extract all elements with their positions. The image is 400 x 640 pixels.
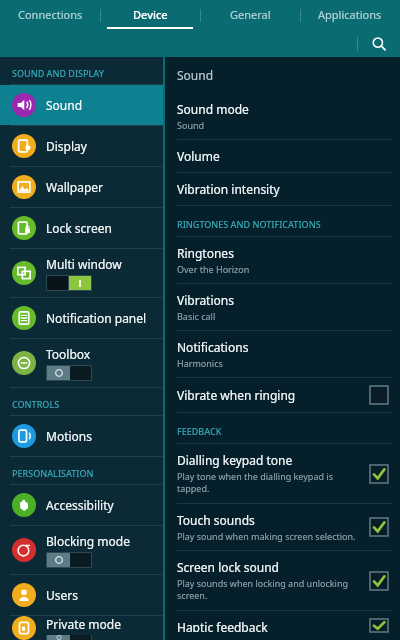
button[interactable]: Accessibility: [0, 485, 163, 525]
staticText: RINGTONES AND NOTIFICATIONS: [177, 218, 321, 230]
staticText: CONTROLS: [12, 398, 60, 410]
button[interactable]: Haptic feedback: [165, 611, 400, 640]
staticText: Blocking mode: [46, 533, 130, 549]
staticText: Dialling keypad tone: [177, 452, 293, 468]
staticText: Connections: [18, 7, 83, 22]
staticText: Display: [46, 138, 87, 154]
button[interactable]: [46, 635, 92, 640]
button[interactable]: [46, 365, 92, 381]
staticText: Harmonics: [177, 357, 223, 369]
button[interactable]: Blocking mode: [0, 526, 163, 574]
staticText: Play sound when making screen selection.: [177, 530, 356, 542]
button[interactable]: Toolbox: [0, 339, 163, 387]
button[interactable]: Search: [368, 33, 390, 55]
button[interactable]: Display: [0, 126, 163, 166]
staticText: Applications: [318, 7, 382, 22]
staticText: PERSONALISATION: [12, 467, 94, 479]
button[interactable]: Private mode: [0, 616, 163, 640]
staticText: Basic call: [177, 310, 216, 322]
button[interactable]: Wallpaper: [0, 167, 163, 207]
button[interactable]: Notifications: [165, 331, 400, 377]
button[interactable]: Toggle option: [370, 518, 388, 536]
button[interactable]: Lock screen: [0, 208, 163, 248]
staticText: Device: [133, 7, 168, 22]
button[interactable]: Dialling keypad tone: [165, 444, 400, 503]
button[interactable]: Volume: [165, 140, 400, 172]
button[interactable]: Users: [0, 575, 163, 615]
staticText: Play tone when the dialling keypad is ta…: [177, 470, 362, 495]
button[interactable]: Motions: [0, 416, 163, 456]
staticText: Play sounds when locking and unlocking s…: [177, 577, 362, 602]
staticText: Ringtones: [177, 245, 234, 261]
staticText: Notification panel: [46, 310, 147, 326]
button[interactable]: Vibration intensity: [165, 173, 400, 205]
button[interactable]: Toggle option: [370, 465, 388, 483]
staticText: SOUND AND DISPLAY: [12, 67, 104, 79]
staticText: Haptic feedback: [177, 619, 268, 632]
button[interactable]: Multi window: [0, 249, 163, 297]
button[interactable]: Toggle option: [370, 386, 388, 404]
staticText: Multi window: [46, 256, 122, 272]
staticText: Sound: [46, 97, 83, 113]
staticText: Vibrate when ringing: [177, 387, 296, 403]
staticText: Notifications: [177, 339, 249, 355]
button[interactable]: Notification panel: [0, 298, 163, 338]
button[interactable]: Toggle option: [370, 619, 388, 632]
button[interactable]: [46, 275, 92, 291]
staticText: Vibrations: [177, 292, 234, 308]
button[interactable]: General: [200, 0, 300, 31]
button[interactable]: Toggle option: [370, 572, 388, 590]
button[interactable]: Ringtones: [165, 237, 400, 283]
staticText: Touch sounds: [177, 512, 255, 528]
button[interactable]: Screen lock sound: [165, 551, 400, 610]
button[interactable]: Device: [100, 0, 200, 31]
staticText: Sound mode: [177, 101, 249, 117]
button[interactable]: Connections: [0, 0, 100, 31]
staticText: Lock screen: [46, 220, 113, 236]
button[interactable]: Touch sounds: [165, 504, 400, 550]
staticText: Private mode: [46, 616, 121, 632]
button[interactable]: Vibrations: [165, 284, 400, 330]
staticText: Motions: [46, 428, 92, 444]
button[interactable]: [46, 552, 92, 568]
staticText: Vibration intensity: [177, 181, 280, 197]
staticText: Over the Horizon: [177, 263, 250, 275]
staticText: FEEDBACK: [177, 425, 222, 437]
button[interactable]: Vibrate when ringing: [165, 378, 400, 412]
staticText: Sound: [177, 67, 214, 83]
staticText: Screen lock sound: [177, 559, 280, 575]
staticText: Sound: [177, 119, 205, 131]
staticText: Users: [46, 587, 78, 603]
staticText: General: [230, 7, 271, 22]
button[interactable]: Sound mode: [165, 93, 400, 139]
staticText: Toolbox: [46, 346, 91, 362]
staticText: Accessibility: [46, 497, 114, 513]
staticText: Wallpaper: [46, 179, 104, 195]
staticText: Volume: [177, 148, 220, 164]
button[interactable]: Applications: [300, 0, 400, 31]
button[interactable]: Sound: [0, 85, 163, 125]
